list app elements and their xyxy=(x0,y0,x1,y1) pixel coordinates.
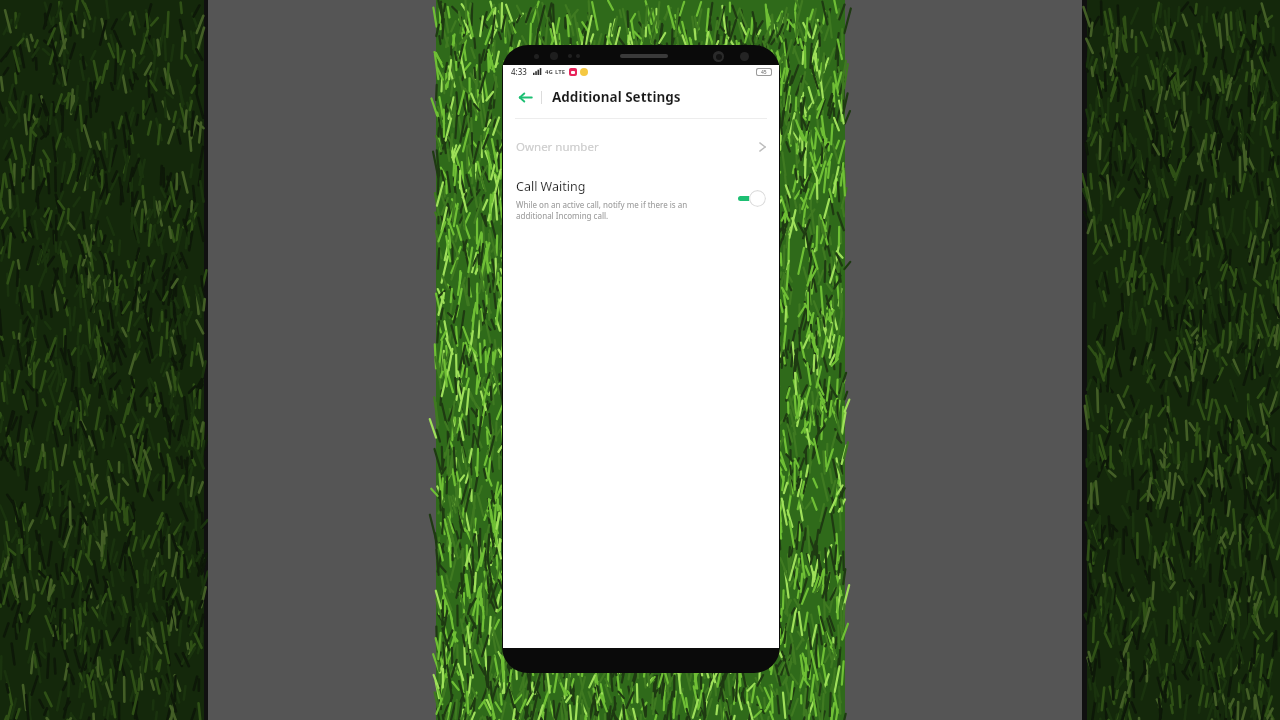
staticText: While on an active call, notify me if th… xyxy=(516,199,688,221)
button[interactable]: Owner number xyxy=(503,119,779,174)
staticText: 45 xyxy=(761,69,767,75)
staticText: 4G xyxy=(545,68,553,76)
staticText: Additional Settings xyxy=(552,88,681,106)
staticText: Owner number xyxy=(516,139,599,155)
button[interactable]: Back xyxy=(512,84,538,110)
button[interactable]: Call Waiting xyxy=(503,174,779,231)
staticText: 4:33 xyxy=(511,66,527,77)
staticText: LTE xyxy=(555,68,566,76)
button[interactable]: Call Waiting toggle, on xyxy=(737,189,767,207)
staticText: Call Waiting xyxy=(516,178,586,195)
